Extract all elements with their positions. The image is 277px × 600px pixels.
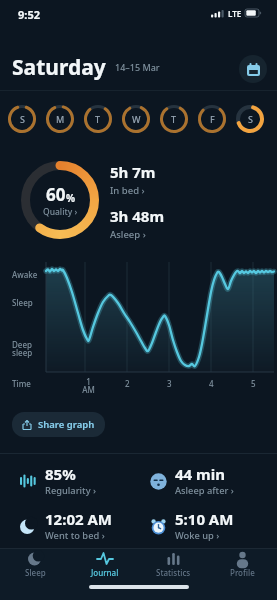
staticText: Went to bed › — [45, 529, 105, 542]
staticText: S — [248, 113, 253, 125]
staticText: Statistics — [156, 567, 191, 578]
staticText: % — [66, 191, 76, 205]
button[interactable]: Profile — [208, 550, 277, 578]
staticText: T — [95, 113, 101, 125]
staticText: 14–15 Mar — [115, 61, 160, 73]
button[interactable]: Sleep — [0, 550, 70, 578]
staticText: 5 — [251, 378, 256, 389]
button[interactable]: W — [121, 104, 151, 134]
staticText: Saturday — [12, 53, 106, 82]
staticText: 9:52 — [18, 7, 40, 22]
staticText: In bed › — [110, 184, 145, 197]
button[interactable]: F — [197, 104, 227, 134]
staticText: Time — [12, 378, 31, 389]
button[interactable]: T — [159, 104, 189, 134]
staticText: 44 min — [175, 464, 225, 484]
button[interactable]: 85% — [16, 464, 96, 497]
button[interactable]: 44 min — [146, 464, 234, 497]
staticText: 85% — [45, 464, 76, 484]
staticText: Journal — [91, 567, 119, 578]
staticText: Asleep after › — [175, 484, 234, 497]
staticText: M — [56, 113, 65, 125]
staticText: 4 — [209, 378, 214, 389]
button[interactable]: Share graph — [12, 412, 105, 437]
staticText: Woke up › — [175, 529, 220, 542]
button[interactable]: 12:02 AM — [16, 509, 112, 542]
staticText: LTE — [228, 8, 242, 19]
staticText: 60 — [46, 183, 66, 206]
staticText: Regularity › — [45, 484, 96, 497]
staticText: Awake — [12, 269, 38, 280]
button[interactable] — [239, 55, 267, 83]
staticText: S — [20, 113, 25, 125]
staticText: 5h 7m — [110, 162, 156, 182]
staticText: 2 — [125, 378, 130, 389]
staticText: Asleep › — [110, 228, 146, 241]
staticText: 3 — [167, 378, 172, 389]
staticText: 5:10 AM — [175, 509, 234, 529]
button[interactable]: S — [7, 104, 37, 134]
staticText: T — [171, 113, 177, 125]
staticText: 12:02 AM — [45, 509, 112, 529]
button[interactable]: Statistics — [139, 550, 208, 578]
staticText: F — [210, 113, 215, 125]
button[interactable]: Journal — [70, 550, 139, 578]
staticText: Quality › — [43, 206, 78, 218]
staticText: Share graph — [38, 418, 95, 431]
staticText: 1 AM — [82, 376, 95, 395]
button[interactable]: M — [45, 104, 75, 134]
staticText: Profile — [230, 567, 255, 578]
staticText: Sleep — [25, 567, 46, 578]
staticText: W — [132, 113, 141, 125]
button[interactable]: T — [83, 104, 113, 134]
button[interactable]: S — [235, 104, 265, 134]
staticText: 3h 48m — [110, 206, 165, 226]
staticText: Deep sleep — [12, 339, 33, 358]
button[interactable]: 5:10 AM — [146, 509, 234, 542]
staticText: Sleep — [12, 297, 33, 308]
